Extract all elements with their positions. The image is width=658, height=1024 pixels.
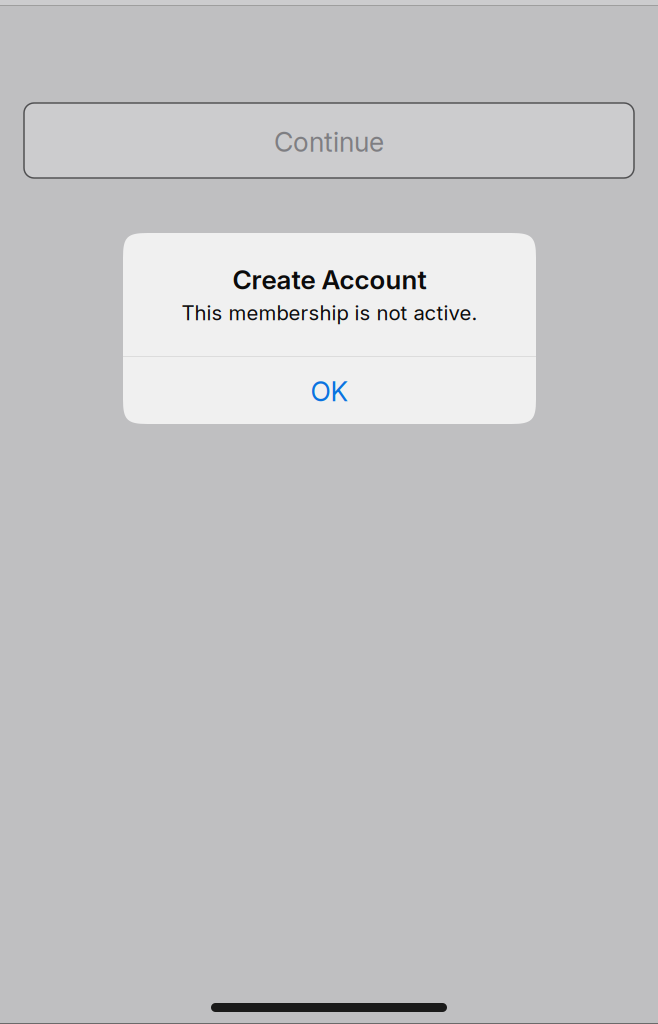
button[interactable]: OK [123, 357, 536, 424]
staticText: OK [310, 375, 348, 408]
staticText: Continue [274, 126, 384, 158]
staticText: This membership is not active. [181, 300, 477, 325]
staticText: Create Account [232, 264, 426, 296]
button[interactable]: Continue [24, 103, 634, 178]
